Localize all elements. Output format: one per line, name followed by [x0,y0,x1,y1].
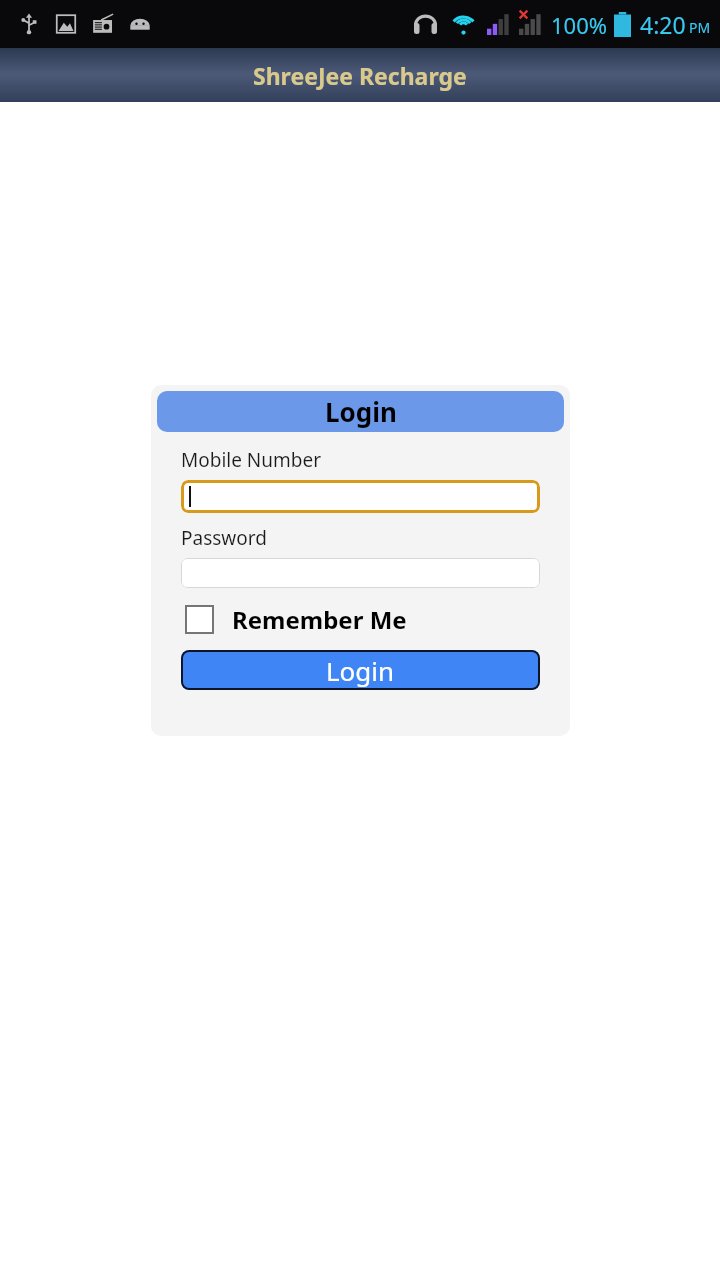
staticText: PM [689,18,711,37]
staticText: 100% [551,10,608,40]
staticText: Remember Me [232,603,407,636]
button[interactable]: Password input [181,558,540,588]
staticText: Login [326,653,395,688]
button[interactable]: Remember Me [181,603,540,636]
button[interactable]: Mobile Number input [181,480,540,513]
staticText: 4:20 [640,9,686,40]
button[interactable]: Login [181,650,540,690]
staticText: Login [325,394,397,429]
staticText: Mobile Number [181,447,322,473]
staticText: ShreeJee Recharge [253,60,467,91]
staticText: Password [181,525,267,551]
button[interactable]: Login [157,391,564,432]
